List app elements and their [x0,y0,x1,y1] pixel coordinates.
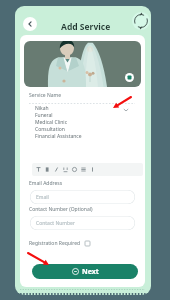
button[interactable]: More [88,165,97,174]
staticText: Next [82,267,99,277]
button[interactable]: Next [32,264,138,279]
staticText: Financial Assistance [35,133,82,140]
button[interactable]: Consultation [35,126,105,133]
button[interactable]: Registration Required [29,240,90,247]
staticText: Funeral [35,112,53,119]
button[interactable]: Bold [43,165,52,174]
staticText: Email [36,194,49,201]
button[interactable]: Text [34,165,43,174]
button[interactable]: Medical Clinic [35,119,105,126]
button[interactable]: Email [30,190,135,204]
staticText: Registration Required [29,240,81,247]
button[interactable]: Funeral [35,112,105,119]
staticText: Contact Number [36,220,75,227]
staticText: Add Service [61,21,111,33]
staticText: Service Name [29,92,62,99]
staticText: Nikah [35,105,49,112]
button[interactable]: Return [132,12,150,30]
staticText: Medical Clinic [35,119,68,126]
button[interactable]: Link [70,165,79,174]
button[interactable]: Nikah [35,105,105,112]
button[interactable]: Italic [52,165,61,174]
staticText: Consultation [35,126,65,133]
button[interactable]: Contact Number [30,216,135,230]
button[interactable]: Underline [61,165,70,174]
button[interactable]: Financial Assistance [35,133,105,140]
staticText: Contact Number (Optional) [29,206,93,213]
staticText: Email Address [29,180,63,187]
button[interactable]: Edit photo [125,73,134,82]
button[interactable]: Back [23,17,37,31]
button[interactable]: List [79,165,88,174]
